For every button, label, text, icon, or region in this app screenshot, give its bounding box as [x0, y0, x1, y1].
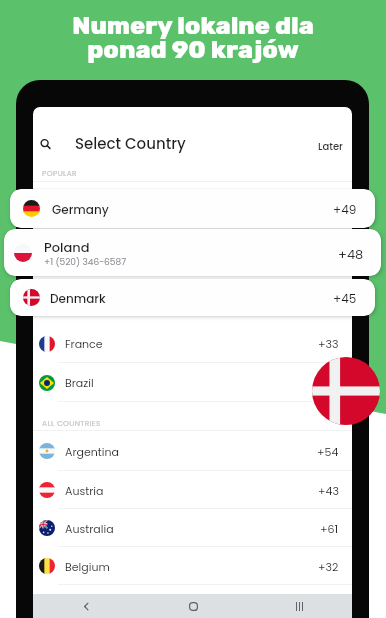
button[interactable]: Brazil — [33, 363, 352, 402]
staticText: Belgium — [65, 559, 110, 574]
staticText: +32 — [318, 559, 339, 574]
button[interactable]: Back — [33, 594, 140, 618]
button[interactable]: Poland — [4, 229, 381, 276]
staticText: Australia — [65, 521, 114, 536]
button[interactable]: Australia — [33, 509, 352, 547]
button[interactable]: Germany — [10, 189, 375, 228]
staticText: POPULAR — [42, 168, 77, 178]
button[interactable]: Argentina — [33, 431, 352, 471]
button[interactable]: Belgium — [33, 547, 352, 585]
staticText: France — [65, 336, 103, 351]
staticText: Brazil — [65, 375, 94, 390]
staticText: Numery lokalne dla ponad 90 krajów — [0, 11, 386, 64]
button[interactable]: Search — [34, 132, 56, 154]
button[interactable]: Denmark — [10, 279, 375, 316]
staticText: Germany — [52, 201, 109, 218]
staticText: Austria — [65, 483, 104, 498]
button[interactable]: Later — [317, 135, 344, 156]
staticText: Later — [318, 139, 343, 153]
staticText: ALL COUNTRIES — [42, 418, 101, 428]
staticText: +61 — [320, 521, 339, 536]
button[interactable]: France — [33, 324, 352, 363]
button[interactable]: Recent apps — [246, 594, 352, 618]
staticText: Denmark — [50, 290, 106, 307]
button[interactable]: Austria — [33, 471, 352, 509]
staticText: +49 — [333, 201, 357, 218]
staticText: Argentina — [65, 444, 119, 459]
staticText: +48 — [338, 245, 364, 263]
staticText: +1 (520) 346-6587 — [44, 256, 127, 269]
staticText: Poland — [44, 238, 90, 256]
staticText: +33 — [318, 336, 339, 351]
staticText: +54 — [317, 444, 339, 459]
staticText: +55 — [317, 375, 339, 390]
staticText: +43 — [318, 483, 339, 498]
staticText: +45 — [333, 290, 357, 307]
button[interactable]: Home — [140, 594, 246, 618]
staticText: Select Country — [75, 133, 186, 154]
